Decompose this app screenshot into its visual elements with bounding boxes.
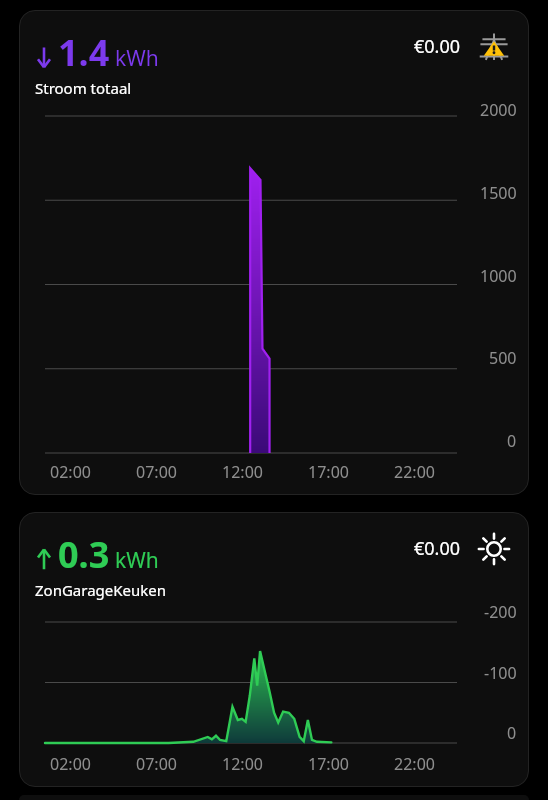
staticText: €0.00 [414,536,461,561]
staticText: 17:00 [308,461,349,483]
staticText: 02:00 [50,753,91,775]
staticText: ZonGarageKeuken [35,580,167,600]
staticText: 12:00 [222,753,263,775]
staticText: 1500 [480,182,517,204]
staticText: 2000 [480,99,517,121]
staticText: kWh [115,546,159,575]
staticText: 22:00 [394,753,435,775]
staticText: 17:00 [308,753,349,775]
button[interactable]: 0.3 [19,512,529,787]
staticText: 0 [507,430,517,452]
button[interactable]: Solar production [475,530,513,568]
staticText: Stroom totaal [35,78,132,98]
staticText: 1.4 [58,28,110,77]
staticText: kWh [115,44,159,73]
staticText: 500 [489,347,517,369]
staticText: 0.3 [58,530,110,579]
button[interactable]: Grid power warning [475,28,513,66]
staticText: 22:00 [394,461,435,483]
staticText: 07:00 [136,461,177,483]
staticText: 1000 [480,265,517,287]
staticText: -200 [484,601,517,623]
staticText: 0 [507,722,517,744]
button[interactable]: 1.4 [19,10,529,495]
staticText: -100 [484,662,517,684]
staticText: 12:00 [222,461,263,483]
staticText: 07:00 [136,753,177,775]
staticText: 02:00 [50,461,91,483]
staticText: €0.00 [414,34,461,59]
